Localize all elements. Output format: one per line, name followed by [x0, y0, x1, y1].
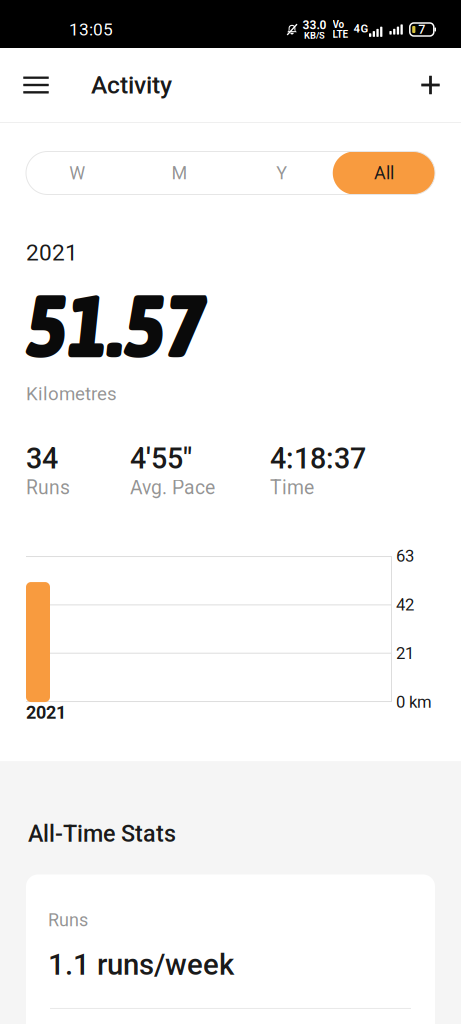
staticText: Time [270, 476, 314, 499]
staticText: 0 km [396, 692, 432, 712]
staticText: 13:05 [69, 19, 113, 40]
staticText: All-Time Stats [28, 820, 176, 847]
staticText: Runs [26, 476, 70, 499]
staticText: 4'55" [130, 442, 192, 475]
button[interactable]: M [128, 151, 230, 194]
staticText: 42 [396, 595, 414, 614]
staticText: 7 [418, 22, 425, 37]
staticText: 2021 [26, 239, 78, 266]
staticText: Y [276, 162, 287, 184]
button[interactable]: Menu [11, 48, 61, 122]
staticText: LTE [332, 28, 348, 40]
staticText: 63 [396, 546, 414, 566]
staticText: 34 [26, 442, 58, 475]
staticText: Kilometres [26, 383, 117, 405]
staticText: Avg. Pace [130, 476, 215, 499]
staticText: Runs [48, 909, 88, 931]
button[interactable]: All [333, 151, 435, 194]
staticText: 1.1 runs/week [48, 948, 234, 982]
button[interactable]: Y [230, 151, 333, 194]
staticText: 4G [353, 22, 368, 35]
staticText: 51.57 [26, 275, 206, 376]
staticText: 33.0 [302, 18, 326, 32]
staticText: Vo [332, 19, 344, 30]
button[interactable]: Add activity [405, 48, 455, 122]
staticText: M [171, 162, 187, 184]
staticText: 2021 [26, 702, 66, 723]
staticText: KB/S [304, 30, 325, 41]
staticText: 4:18:37 [270, 442, 366, 475]
staticText: Activity [91, 70, 172, 99]
button[interactable]: W [26, 151, 128, 194]
staticText: W [69, 162, 85, 184]
staticText: 21 [396, 644, 414, 663]
staticText: All [374, 162, 394, 184]
